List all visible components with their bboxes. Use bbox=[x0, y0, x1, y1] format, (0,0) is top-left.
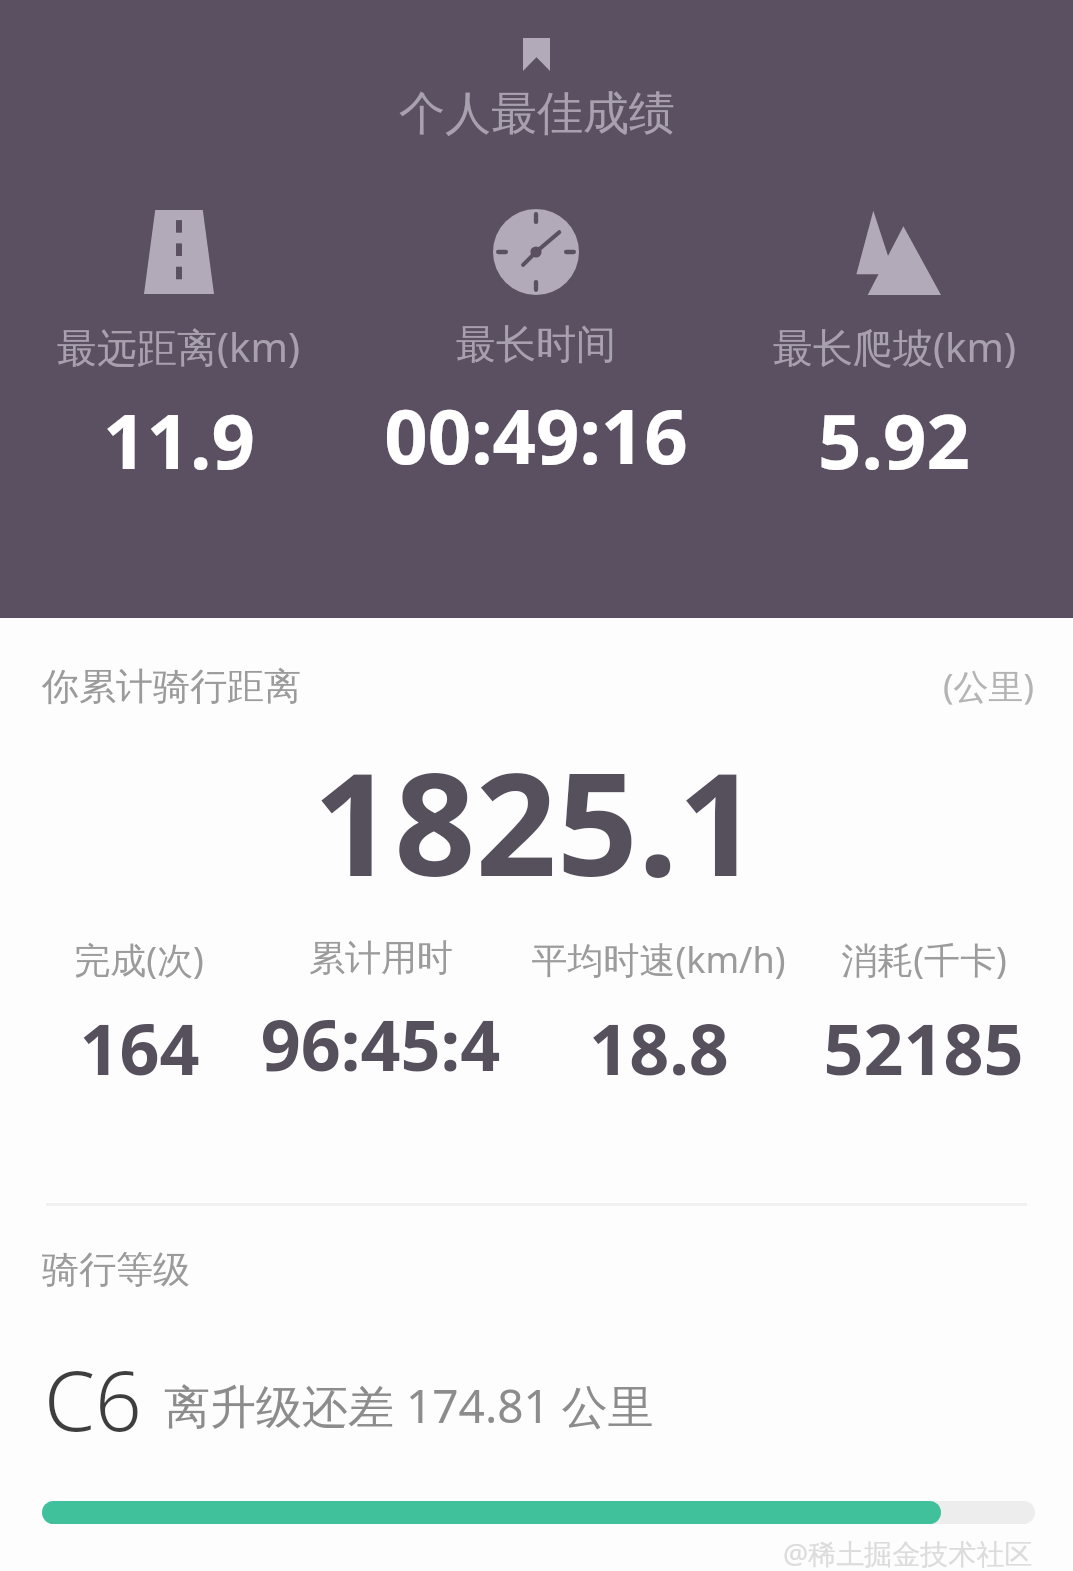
staticText: 最远距离(km) bbox=[57, 319, 300, 374]
staticText: 96:45:48 bbox=[248, 996, 513, 1091]
staticText: 11.9 bbox=[103, 388, 255, 492]
staticText: 消耗(千卡) bbox=[841, 935, 1007, 984]
staticText: C6 bbox=[44, 1343, 142, 1455]
staticText: 你累计骑行距离 bbox=[42, 663, 301, 710]
staticText: 18.8 bbox=[589, 1000, 729, 1095]
button[interactable]: Personal best badge bbox=[523, 38, 550, 71]
button[interactable]: Longest climb bbox=[715, 207, 1073, 492]
staticText: 1825.1 bbox=[313, 724, 760, 917]
staticText: 最长爬坡(km) bbox=[773, 319, 1016, 374]
staticText: 完成(次) bbox=[74, 935, 204, 984]
staticText: 最长时间 bbox=[456, 319, 616, 369]
button[interactable]: Longest time bbox=[357, 207, 715, 487]
staticText: 骑行等级 bbox=[42, 1246, 190, 1293]
staticText: 164 bbox=[79, 1000, 200, 1095]
button[interactable]: Longest distance bbox=[0, 207, 357, 492]
staticText: 个人最佳成绩 bbox=[399, 85, 675, 143]
staticText: (公里) bbox=[943, 662, 1035, 710]
button[interactable]: 完成(次) bbox=[30, 935, 248, 1095]
button[interactable]: 消耗(千卡) bbox=[804, 935, 1043, 1095]
staticText: 离升级还差 174.81 公里 bbox=[164, 1374, 654, 1437]
staticText: @稀土掘金技术社区 bbox=[783, 1534, 1033, 1571]
staticText: 00:49:16 bbox=[384, 383, 688, 487]
staticText: 平均时速(km/h) bbox=[531, 935, 786, 984]
staticText: 累计用时 bbox=[309, 935, 453, 980]
staticText: 5.92 bbox=[818, 388, 970, 492]
button[interactable]: 平均时速(km/h) bbox=[513, 935, 804, 1095]
staticText: 52185 bbox=[823, 1000, 1024, 1095]
button[interactable]: 累计用时 bbox=[248, 935, 513, 1091]
